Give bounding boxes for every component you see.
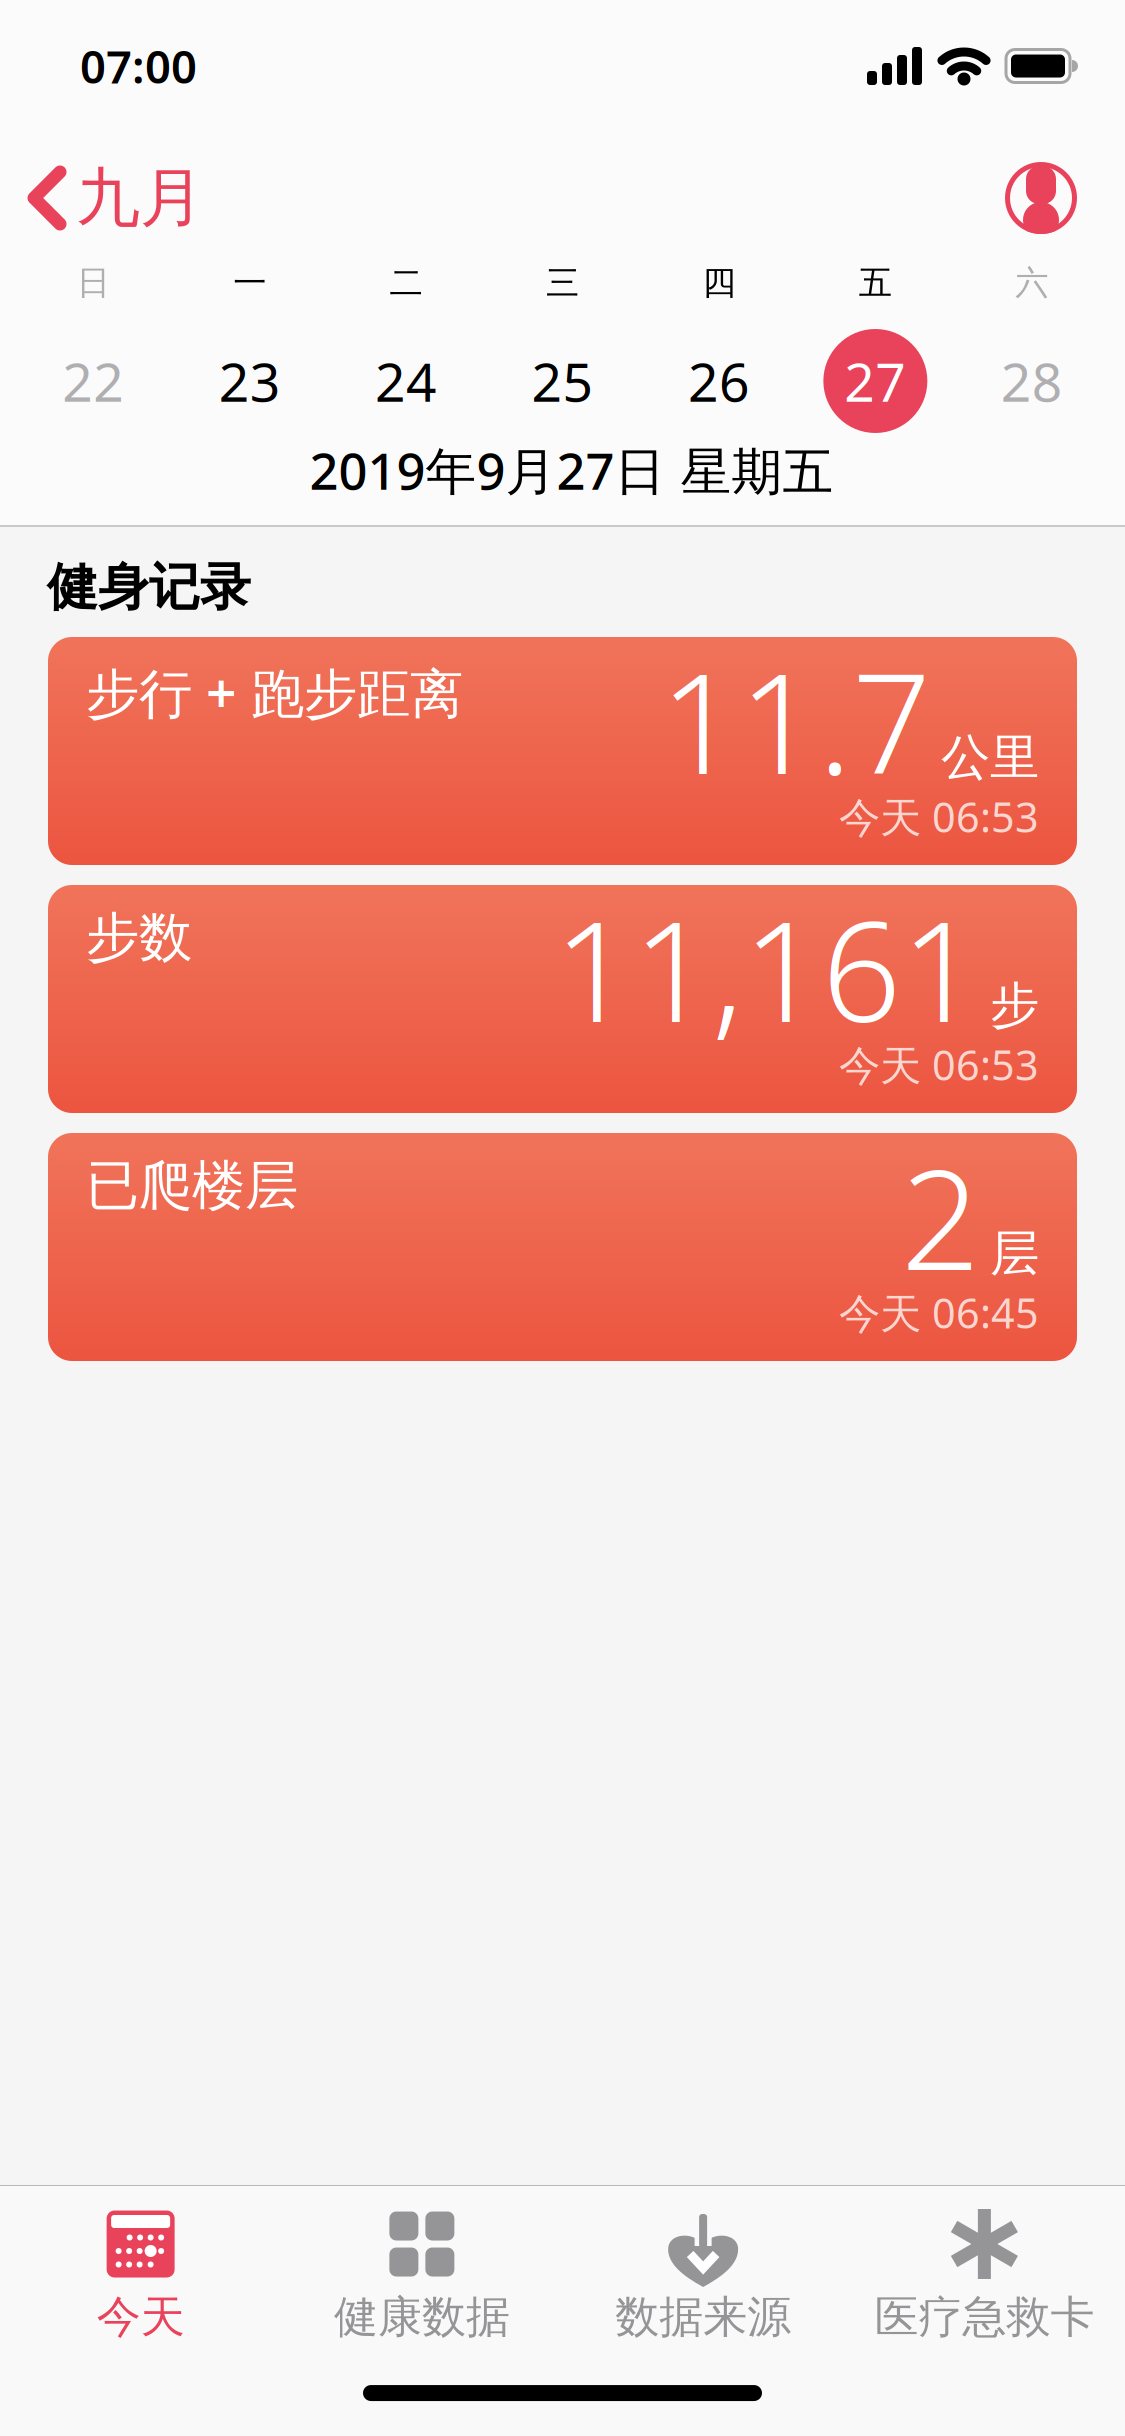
staticText: 一	[233, 262, 266, 303]
staticText: 层	[990, 1223, 1039, 1284]
staticText: 2	[901, 1124, 980, 1308]
staticText: 22	[62, 346, 124, 416]
staticText: 2019年9月27日 星期五	[309, 436, 833, 504]
staticText: 25	[531, 346, 593, 416]
button[interactable]: 已爬楼层	[48, 1133, 1077, 1361]
staticText: 今天	[97, 2290, 185, 2344]
staticText: 数据来源	[615, 2290, 791, 2344]
staticText: 四	[702, 262, 735, 303]
staticText: 已爬楼层	[86, 1153, 298, 1218]
staticText: 今天 06:53	[839, 789, 1039, 844]
staticText: 公里	[941, 727, 1039, 788]
staticText: 11.7	[660, 628, 931, 812]
button[interactable]: 今天	[0, 2206, 281, 2344]
button[interactable]: 九月	[0, 159, 204, 237]
staticText: 今天 06:45	[839, 1285, 1039, 1340]
staticText: 步行 + 跑步距离	[86, 657, 463, 728]
staticText: 26	[688, 346, 750, 416]
staticText: 健身记录	[47, 556, 251, 619]
button[interactable]	[1005, 162, 1125, 234]
staticText: 今天 06:53	[839, 1037, 1039, 1092]
staticText: 23	[219, 346, 281, 416]
staticText: 健康数据	[334, 2290, 510, 2344]
staticText: 九月	[76, 159, 204, 237]
button[interactable]: 步行 + 跑步距离	[48, 637, 1077, 865]
staticText: 步	[990, 975, 1039, 1036]
button[interactable]: 健康数据	[281, 2206, 562, 2344]
button[interactable]: 步数	[48, 885, 1077, 1113]
staticText: 27	[844, 346, 906, 416]
staticText: 医疗急救卡	[874, 2290, 1094, 2344]
staticText: 二	[390, 262, 423, 303]
staticText: 日	[77, 262, 110, 303]
staticText: 24	[375, 346, 437, 416]
staticText: 五	[859, 262, 892, 303]
button[interactable]: 数据来源	[562, 2206, 844, 2344]
staticText: 六	[1015, 262, 1048, 303]
staticText: 07:00	[80, 36, 197, 96]
staticText: 11,161	[554, 876, 980, 1060]
staticText: 步数	[86, 905, 192, 970]
button[interactable]: 医疗急救卡	[844, 2206, 1125, 2344]
staticText: 三	[546, 262, 579, 303]
staticText: 28	[1001, 346, 1063, 416]
